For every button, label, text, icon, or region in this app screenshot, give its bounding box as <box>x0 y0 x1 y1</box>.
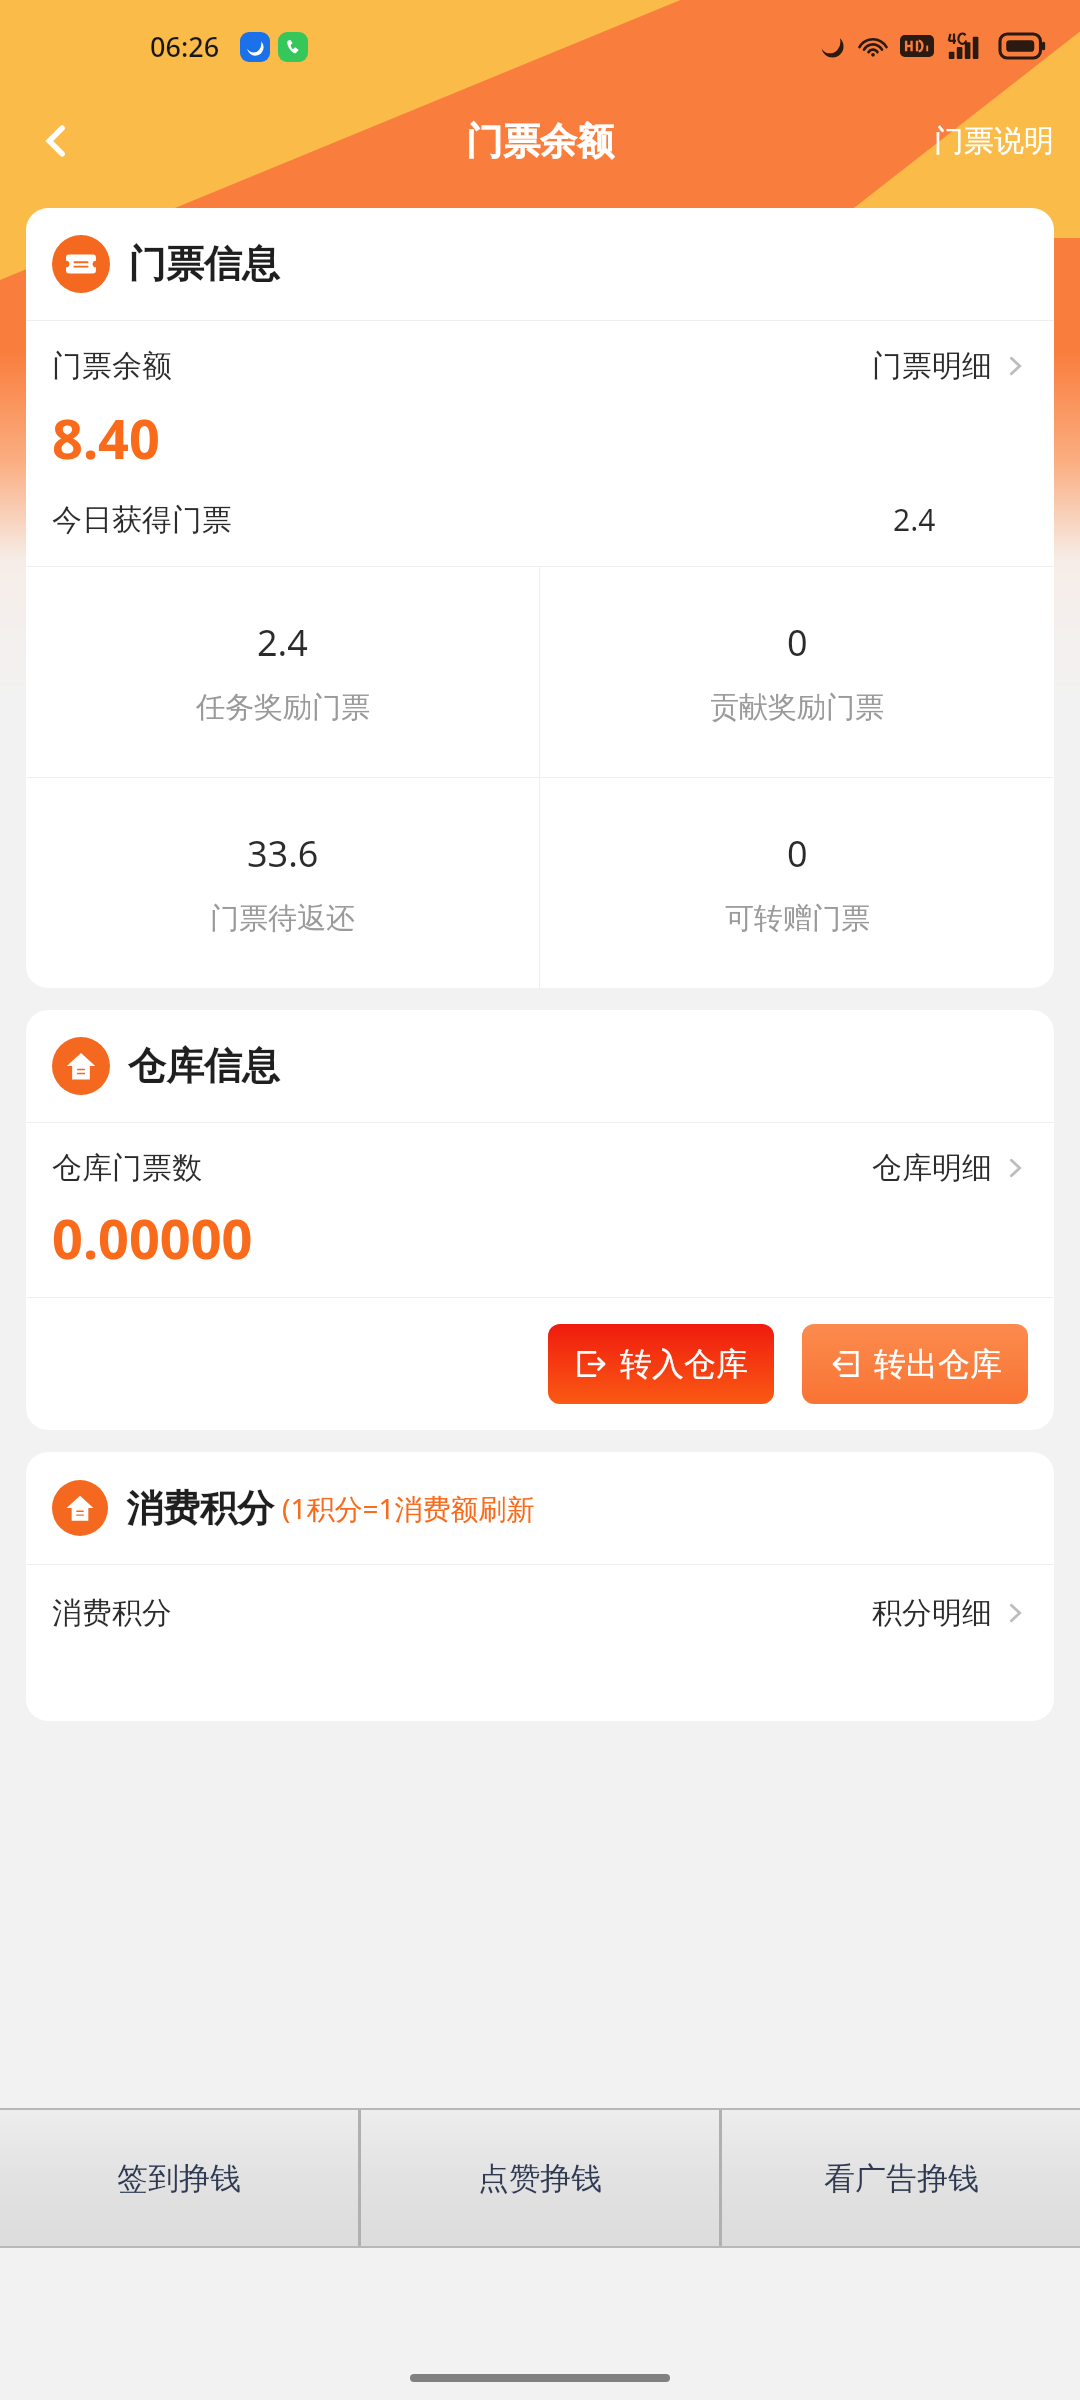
button[interactable]: 看广告挣钱 <box>722 2110 1080 2246</box>
staticText: 仓库门票数 <box>52 1149 202 1187</box>
staticText: 8.40 <box>52 401 160 475</box>
staticText: 转入仓库 <box>620 1344 748 1384</box>
button[interactable]: 0 <box>540 778 1054 988</box>
button[interactable]: 33.6 <box>26 778 539 988</box>
staticText: 2.4 <box>257 618 308 667</box>
button[interactable]: 门票明细 <box>872 347 1028 385</box>
button[interactable]: 门票说明 <box>908 108 1080 174</box>
staticText: 33.6 <box>247 829 319 878</box>
staticText: 可转赠门票 <box>725 900 870 937</box>
staticText: 2.4 <box>893 499 936 540</box>
button[interactable]: 积分明细 <box>872 1594 1028 1632</box>
button[interactable]: 转入仓库 <box>548 1324 774 1404</box>
staticText: 0.00000 <box>52 1201 253 1275</box>
staticText: 积分明细 <box>872 1594 992 1632</box>
staticText: 门票余额 <box>466 118 614 165</box>
staticText: (1积分=1消费额刷新 <box>282 1489 535 1527</box>
button[interactable]: 2.4 <box>26 567 539 777</box>
staticText: 门票说明 <box>934 122 1054 160</box>
button[interactable]: 0 <box>540 567 1054 777</box>
button[interactable]: 签到挣钱 <box>0 2110 358 2246</box>
staticText: 看广告挣钱 <box>824 2159 979 2198</box>
button[interactable]: Back <box>22 107 90 175</box>
staticText: 仓库信息 <box>128 1042 280 1090</box>
staticText: 门票明细 <box>872 347 992 385</box>
button[interactable]: 点赞挣钱 <box>361 2110 719 2246</box>
staticText: 门票信息 <box>128 240 280 288</box>
staticText: 门票余额 <box>52 347 172 385</box>
staticText: 0 <box>787 829 808 878</box>
staticText: 0 <box>787 618 808 667</box>
staticText: 转出仓库 <box>874 1344 1002 1384</box>
staticText: 06:26 <box>150 28 220 65</box>
staticText: 消费积分 <box>126 1485 274 1532</box>
staticText: 门票待返还 <box>210 900 355 937</box>
staticText: 任务奖励门票 <box>196 689 370 726</box>
staticText: 贡献奖励门票 <box>710 689 884 726</box>
staticText: 签到挣钱 <box>117 2159 241 2198</box>
staticText: 今日获得门票 <box>52 501 232 539</box>
button[interactable]: 转出仓库 <box>802 1324 1028 1404</box>
button[interactable]: 仓库明细 <box>872 1149 1028 1187</box>
staticText: 点赞挣钱 <box>478 2159 602 2198</box>
staticText: 仓库明细 <box>872 1149 992 1187</box>
staticText: 消费积分 <box>52 1594 172 1632</box>
